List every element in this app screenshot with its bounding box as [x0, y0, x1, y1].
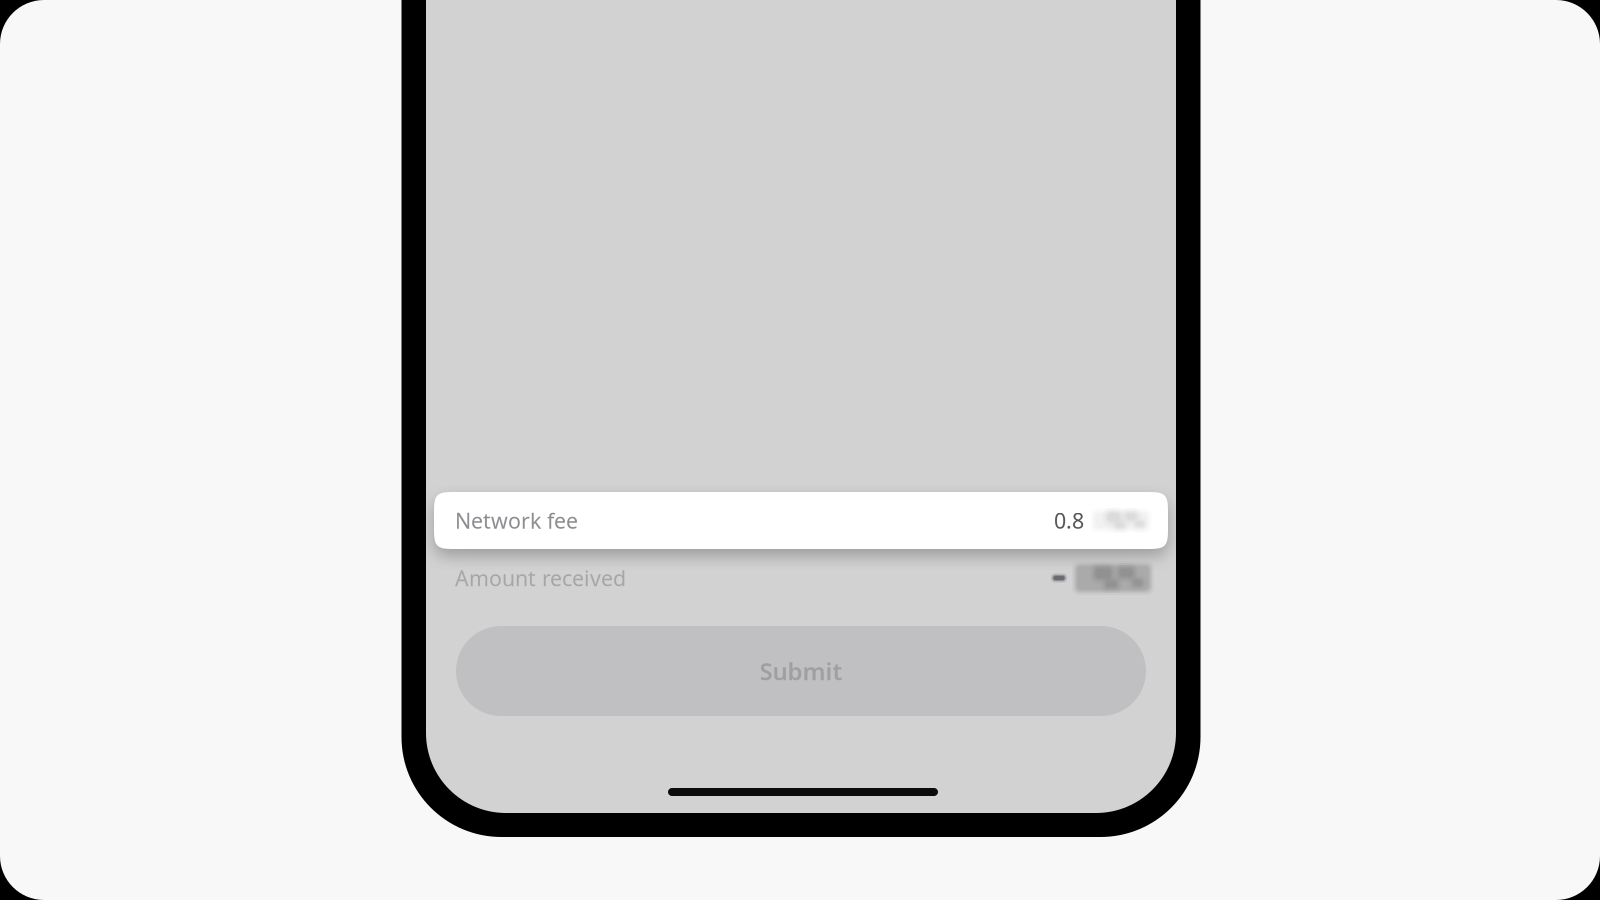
staticText: Amount received: [455, 564, 626, 592]
staticText: 0.8: [1054, 506, 1084, 535]
staticText: Network fee: [455, 506, 578, 535]
button[interactable]: Submit: [456, 626, 1146, 716]
staticText: Submit: [759, 655, 842, 687]
button[interactable]: Network fee: [434, 492, 1168, 549]
